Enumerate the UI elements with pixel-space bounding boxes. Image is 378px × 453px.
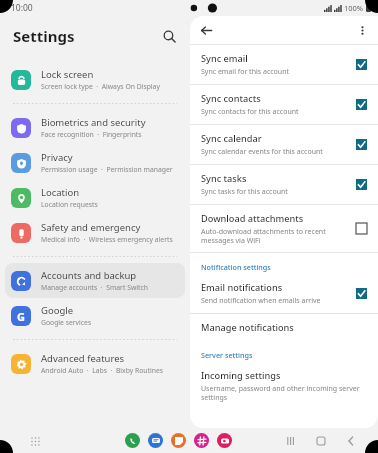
button[interactable]: Checked [356,179,367,190]
staticText: Face recognition · Fingerprints [41,130,142,139]
button[interactable]: Lock screen [5,62,185,97]
staticText: Android Auto · Labs · Bixby Routines [41,366,163,375]
button[interactable]: Advanced features [5,346,185,381]
staticText: Google services [41,318,92,327]
button[interactable]: Apps [26,432,44,450]
button[interactable]: More options [352,20,372,40]
staticText: Sync email for this account [201,67,290,77]
button[interactable]: Incoming settings [190,362,378,409]
button[interactable]: Recents [282,432,300,450]
staticText: Location requests [41,200,98,209]
staticText: 100% [344,3,364,13]
staticText: Notification settings [201,262,271,272]
button[interactable]: Location [5,180,185,215]
button[interactable]: Search [158,25,180,47]
staticText: Send notification when emails arrive [201,296,321,306]
button[interactable]: Sync email [190,45,378,84]
staticText: Sync contacts for this account [201,107,299,117]
staticText: Sync email [201,52,248,65]
staticText: Accounts and backup [41,269,137,282]
staticText: Email notifications [201,281,283,294]
button[interactable]: Sync contacts [190,85,378,124]
button[interactable]: Camera [217,433,232,448]
staticText: Safety and emergency [41,221,141,234]
button[interactable]: G [5,298,185,333]
staticText: Incoming settings [201,369,281,382]
staticText: Manage accounts · Smart Switch [41,283,148,292]
button[interactable]: Privacy [5,145,185,180]
staticText: Sync calendar events for this account [201,147,323,157]
button[interactable]: Sync tasks [190,165,378,204]
button[interactable]: Messages [148,433,163,448]
staticText: Medical info · Wireless emergency alerts [41,235,173,244]
button[interactable]: Phone [125,433,140,448]
staticText: G [17,309,25,324]
staticText: Manage notifications [201,321,294,334]
staticText: Server settings [201,350,253,360]
staticText: Sync tasks for this account [201,187,288,197]
staticText: Sync tasks [201,172,247,185]
staticText: Location [41,186,80,199]
button[interactable]: Checked [356,59,367,70]
staticText: Auto-download attachments to recent mess… [201,227,326,245]
button[interactable]: Download attachments [190,205,378,252]
button[interactable]: Slack [194,433,209,448]
staticText: Lock screen [41,68,94,81]
button[interactable]: Unchecked [356,223,367,234]
staticText: Screen lock type · Always On Display [41,82,160,91]
button[interactable]: Manage notifications [190,314,378,341]
staticText: Sync calendar [201,132,262,145]
staticText: Biometrics and security [41,116,146,129]
staticText: Sync contacts [201,92,261,105]
button[interactable]: Biometrics and security [5,110,185,145]
staticText: Settings [13,26,75,46]
button[interactable]: Sync calendar [190,125,378,164]
staticText: Google [41,304,74,317]
button[interactable]: Back [342,432,360,450]
button[interactable]: Back [196,20,216,40]
button[interactable]: Checked [356,288,367,299]
staticText: Advanced features [41,352,125,365]
button[interactable]: Email notifications [190,274,378,313]
button[interactable]: Checked [356,99,367,110]
staticText: Download attachments [201,212,304,225]
button[interactable]: Safety and emergency [5,215,185,250]
button[interactable]: Checked [356,139,367,150]
staticText: 10:00 [11,2,33,14]
staticText: Permission usage · Permission manager [41,165,173,174]
staticText: Privacy [41,151,73,164]
button[interactable]: Accounts and backup [5,263,185,298]
button[interactable]: Home [312,432,330,450]
staticText: Username, password and other incoming se… [201,384,360,402]
button[interactable]: Notes [171,433,186,448]
